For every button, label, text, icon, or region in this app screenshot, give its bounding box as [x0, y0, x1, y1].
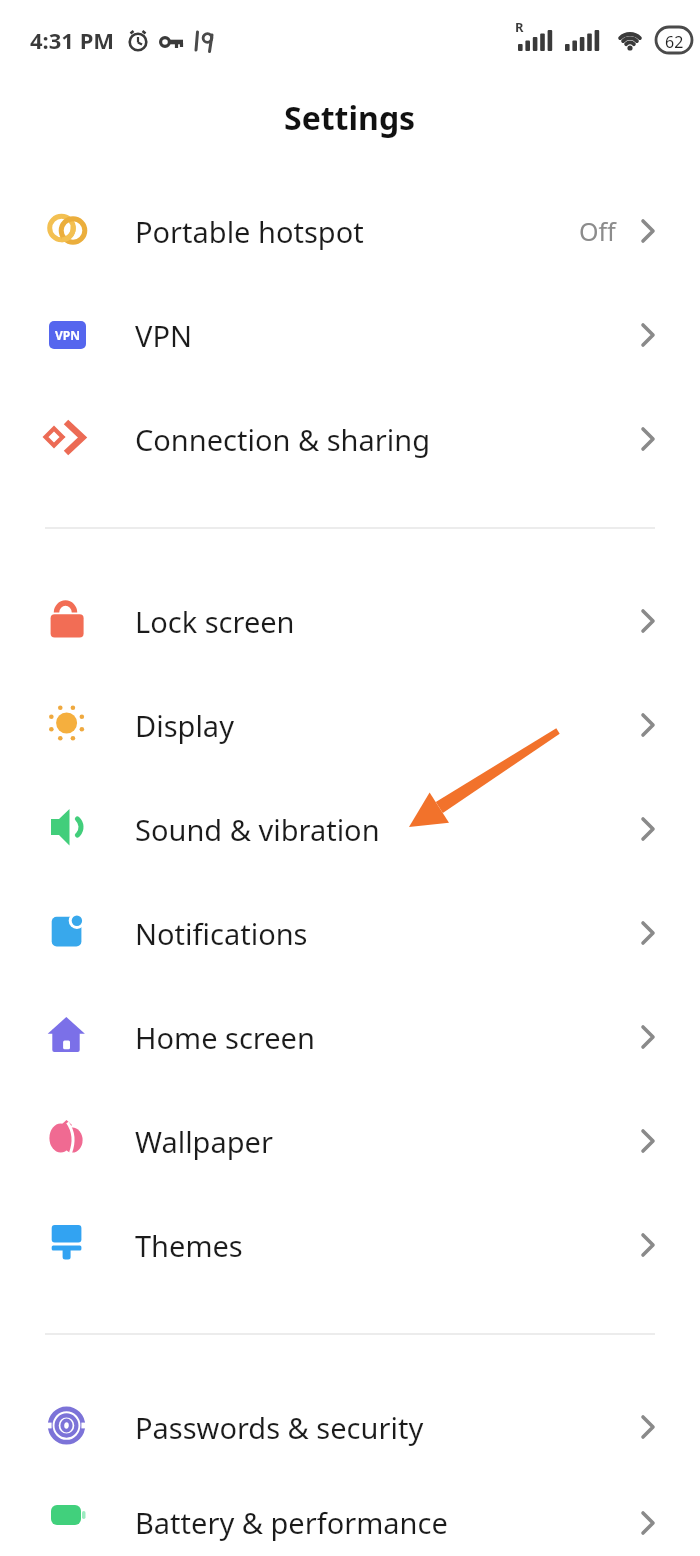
staticText: R	[515, 18, 524, 36]
button[interactable]: Portable hotspot	[0, 179, 700, 283]
button[interactable]: Home screen	[0, 985, 700, 1089]
button[interactable]: Lock screen	[0, 569, 700, 673]
staticText: Display	[135, 706, 234, 745]
button[interactable]: Themes	[0, 1193, 700, 1297]
staticText: Settings	[284, 96, 416, 140]
staticText: 4:31 PM	[30, 25, 115, 55]
staticText: Home screen	[135, 1018, 315, 1057]
button[interactable]: Display	[0, 673, 700, 777]
staticText: Portable hotspot	[135, 212, 364, 251]
staticText: Lock screen	[135, 602, 295, 641]
staticText: 62	[665, 31, 684, 53]
staticText: Wallpaper	[135, 1122, 273, 1161]
staticText: Connection & sharing	[135, 420, 431, 459]
staticText: Off	[579, 214, 616, 248]
staticText: Notifications	[135, 914, 308, 953]
button[interactable]: Wallpaper	[0, 1089, 700, 1193]
button[interactable]: VPN	[0, 283, 700, 387]
staticText: Battery & performance	[135, 1503, 448, 1542]
staticText: VPN	[135, 316, 192, 355]
button[interactable]: Battery & performance	[0, 1489, 700, 1556]
button[interactable]: Notifications	[0, 881, 700, 985]
staticText: Themes	[135, 1226, 243, 1265]
staticText: VPN	[55, 327, 81, 343]
button[interactable]: Passwords & security	[0, 1375, 700, 1479]
staticText: Passwords & security	[135, 1408, 424, 1447]
staticText: Sound & vibration	[135, 810, 380, 849]
button[interactable]: Connection & sharing	[0, 387, 700, 491]
button[interactable]: Sound & vibration	[0, 777, 700, 881]
